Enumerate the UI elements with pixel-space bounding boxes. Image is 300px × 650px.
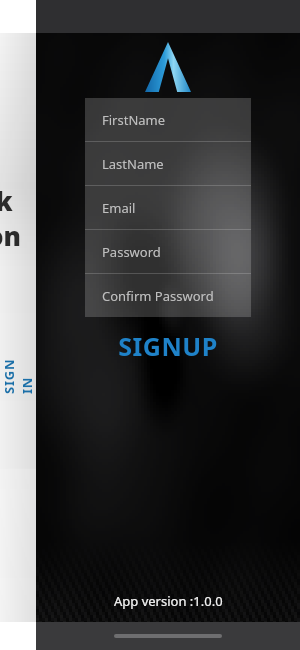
button[interactable]: LastName bbox=[85, 142, 251, 186]
staticText: LastName bbox=[102, 155, 164, 173]
button[interactable]: FirstName bbox=[85, 98, 251, 142]
button[interactable]: Confirm Password bbox=[85, 274, 251, 317]
other: App logo bbox=[145, 42, 191, 92]
button[interactable]: Sign in bbox=[0, 33, 36, 622]
button[interactable]: Email bbox=[85, 186, 251, 230]
staticText: SIGN IN bbox=[0, 358, 36, 394]
staticText: Email bbox=[102, 199, 136, 217]
staticText: App version :1.0.0 bbox=[114, 592, 223, 610]
staticText: Password bbox=[102, 243, 161, 261]
staticText: FirstName bbox=[102, 111, 166, 129]
button[interactable]: SIGNUP bbox=[36, 329, 300, 363]
staticText: ikon bbox=[0, 183, 23, 253]
staticText: Confirm Password bbox=[102, 287, 214, 305]
staticText: SIGNUP bbox=[118, 329, 218, 363]
button[interactable]: Password bbox=[85, 230, 251, 274]
